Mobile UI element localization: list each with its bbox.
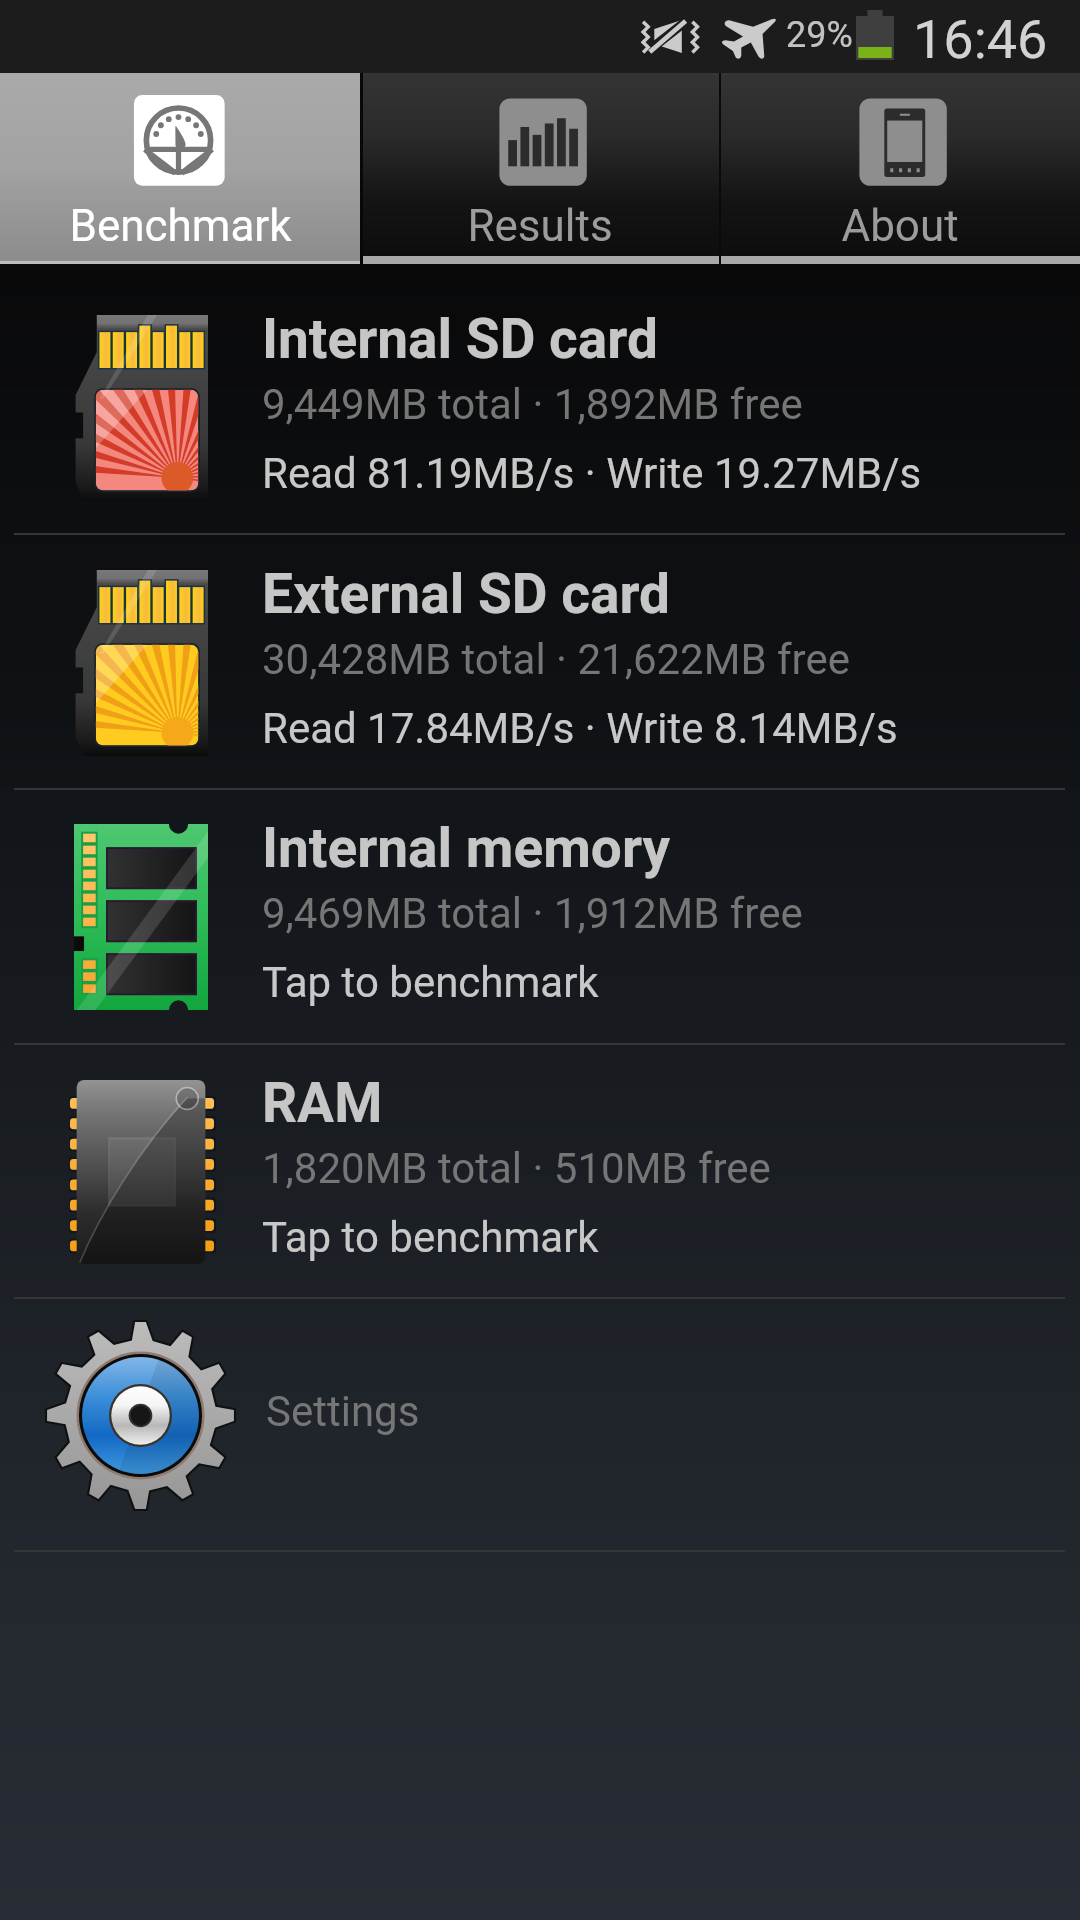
staticText: 9,469MB total · 1,912MB free bbox=[262, 889, 803, 938]
button[interactable]: Results bbox=[360, 73, 720, 264]
staticText: Tap to benchmark bbox=[262, 1213, 599, 1262]
staticText: Benchmark bbox=[69, 200, 292, 252]
staticText: RAM bbox=[262, 1071, 383, 1135]
button[interactable]: About bbox=[720, 73, 1080, 264]
button[interactable]: Internal SD card bbox=[0, 264, 1080, 533]
button[interactable]: Internal memory bbox=[0, 790, 1080, 1043]
staticText: 16:46 bbox=[913, 8, 1048, 71]
button[interactable]: Settings bbox=[0, 1299, 1080, 1550]
staticText: 1,820MB total · 510MB free bbox=[262, 1144, 771, 1193]
staticText: Read 81.19MB/s · Write 19.27MB/s bbox=[262, 449, 922, 498]
button[interactable]: External SD card bbox=[0, 535, 1080, 788]
staticText: Tap to benchmark bbox=[262, 958, 599, 1007]
staticText: Results bbox=[467, 200, 613, 252]
staticText: Settings bbox=[266, 1387, 420, 1436]
staticText: 9,449MB total · 1,892MB free bbox=[262, 380, 803, 429]
staticText: Internal SD card bbox=[262, 307, 658, 371]
staticText: Read 17.84MB/s · Write 8.14MB/s bbox=[262, 704, 898, 753]
staticText: 29% bbox=[786, 14, 853, 56]
button[interactable]: RAM bbox=[0, 1045, 1080, 1297]
staticText: External SD card bbox=[262, 562, 670, 626]
staticText: Internal memory bbox=[262, 816, 671, 880]
staticText: About bbox=[841, 200, 959, 252]
staticText: 30,428MB total · 21,622MB free bbox=[262, 635, 850, 684]
button[interactable]: Benchmark bbox=[0, 73, 360, 264]
